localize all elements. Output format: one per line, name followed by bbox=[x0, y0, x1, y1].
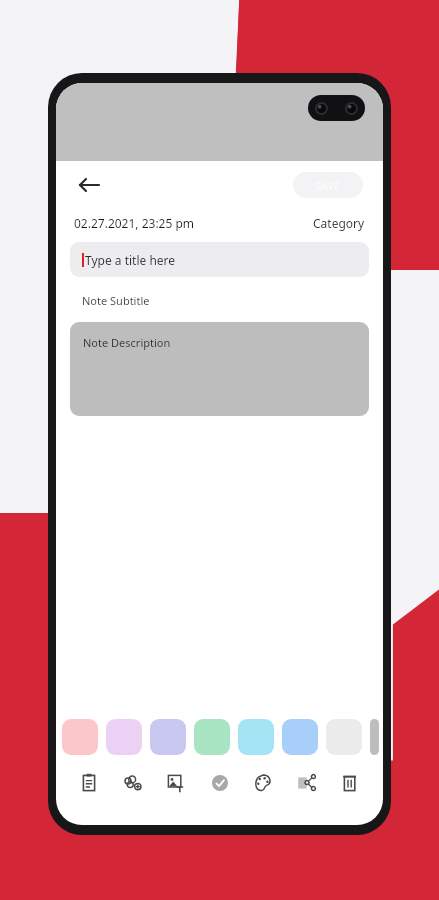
button[interactable]: Clipboard bbox=[72, 766, 106, 800]
button[interactable]: Colour 4 bbox=[238, 719, 274, 755]
button[interactable]: Add image bbox=[116, 766, 150, 800]
button[interactable]: Colour 0 bbox=[62, 719, 98, 755]
staticText: Type a title here bbox=[85, 252, 176, 268]
button[interactable]: Note Description bbox=[70, 322, 369, 416]
button[interactable]: Type a title here bbox=[70, 242, 369, 277]
button[interactable]: Colour 3 bbox=[194, 719, 230, 755]
button[interactable]: Category bbox=[313, 215, 365, 231]
button[interactable]: Checklist bbox=[203, 766, 237, 800]
button[interactable]: Back bbox=[72, 168, 106, 202]
button[interactable]: Share bbox=[290, 766, 324, 800]
button[interactable]: Palette bbox=[246, 766, 280, 800]
button[interactable]: Colour 5 bbox=[282, 719, 318, 755]
button[interactable]: Note Subtitle bbox=[82, 293, 357, 308]
button[interactable]: Colour 7 bbox=[370, 719, 379, 755]
button[interactable]: Add text bbox=[159, 766, 193, 800]
staticText: Note Subtitle bbox=[82, 293, 150, 308]
button[interactable]: Delete bbox=[333, 766, 367, 800]
staticText: 02.27.2021, 23:25 pm bbox=[74, 215, 195, 231]
button[interactable]: Colour 1 bbox=[106, 719, 142, 755]
staticText: Category bbox=[313, 215, 365, 231]
button[interactable]: Colour 6 bbox=[326, 719, 362, 755]
button[interactable]: SAVE bbox=[293, 172, 363, 198]
button[interactable]: Colour 2 bbox=[150, 719, 186, 755]
staticText: Note Description bbox=[83, 335, 171, 350]
